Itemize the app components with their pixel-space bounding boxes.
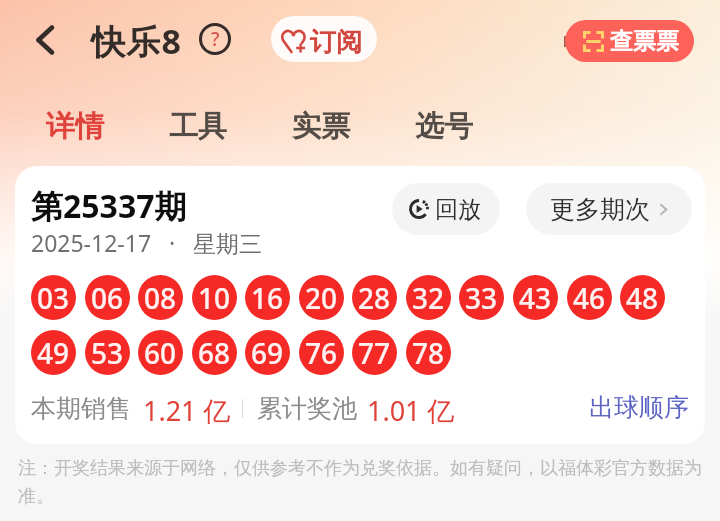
staticText: 08 bbox=[144, 279, 177, 317]
staticText: 第25337期 bbox=[31, 184, 187, 228]
staticText: 查票票 bbox=[610, 27, 679, 56]
staticText: 53 bbox=[91, 334, 124, 372]
staticText: 1.21 亿 bbox=[143, 392, 231, 424]
staticText: 06 bbox=[91, 279, 124, 317]
staticText: 1.01 亿 bbox=[367, 392, 455, 424]
staticText: 28 bbox=[358, 279, 391, 317]
button[interactable]: 回放 bbox=[392, 183, 500, 235]
staticText: 03 bbox=[37, 279, 70, 317]
staticText: ? bbox=[211, 26, 220, 52]
button[interactable]: 订阅 bbox=[271, 16, 377, 62]
button[interactable]: 出球顺序 bbox=[585, 388, 693, 427]
button[interactable]: 详情 bbox=[38, 102, 112, 150]
staticText: 33 bbox=[465, 279, 498, 317]
button[interactable]: Back bbox=[24, 20, 64, 60]
staticText: 订阅 bbox=[310, 26, 362, 59]
staticText: 46 bbox=[573, 279, 606, 317]
staticText: 工具 bbox=[169, 108, 227, 145]
staticText: 68 bbox=[198, 334, 231, 372]
staticText: 回放 bbox=[435, 195, 481, 224]
staticText: 10 bbox=[198, 279, 231, 317]
staticText: 选号 bbox=[415, 108, 473, 145]
staticText: 48 bbox=[626, 279, 659, 317]
staticText: 60 bbox=[144, 334, 177, 372]
staticText: 2025-12-17 · 星期三 bbox=[31, 227, 263, 258]
staticText: 更多期次 bbox=[550, 194, 650, 225]
staticText: 累计奖池 bbox=[257, 393, 357, 424]
staticText: 76 bbox=[305, 334, 338, 372]
staticText: 43 bbox=[519, 279, 552, 317]
staticText: 快乐8 bbox=[91, 18, 183, 64]
button[interactable]: 查票票 bbox=[565, 20, 694, 62]
staticText: 49 bbox=[37, 334, 70, 372]
button[interactable]: 工具 bbox=[161, 102, 235, 150]
staticText: 32 bbox=[412, 279, 445, 317]
staticText: 78 bbox=[412, 334, 445, 372]
staticText: 实票 bbox=[292, 108, 350, 145]
staticText: 20 bbox=[305, 279, 338, 317]
button[interactable]: 选号 bbox=[407, 102, 481, 150]
staticText: 16 bbox=[251, 279, 284, 317]
staticText: 出球顺序 bbox=[589, 392, 689, 423]
staticText: 详情 bbox=[46, 108, 104, 145]
button[interactable]: 实票 bbox=[284, 102, 358, 150]
staticText: 本期销售 bbox=[31, 393, 131, 424]
button[interactable]: Help bbox=[199, 23, 231, 55]
staticText: 注：开奖结果来源于网络，仅供参考不作为兑奖依据。如有疑问，以福体彩官方数据为准。 bbox=[18, 457, 708, 507]
staticText: 77 bbox=[358, 334, 391, 372]
staticText: 69 bbox=[251, 334, 284, 372]
button[interactable]: 更多期次 bbox=[526, 183, 692, 235]
